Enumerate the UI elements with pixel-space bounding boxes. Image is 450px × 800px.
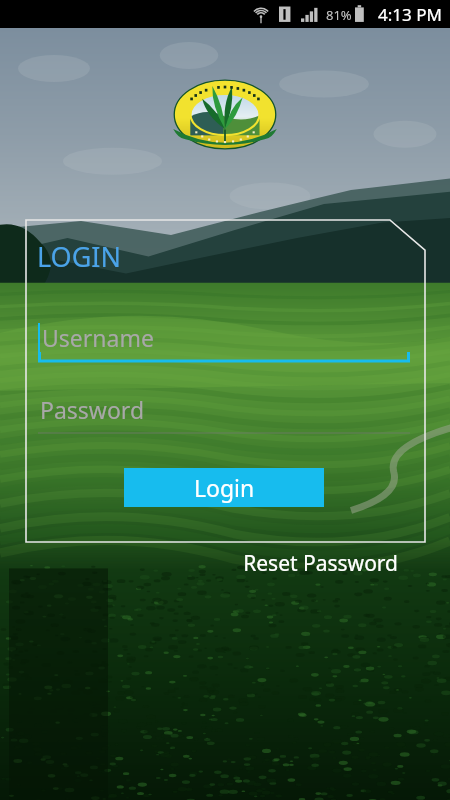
button[interactable]: Reset Password [239, 546, 402, 581]
staticText: Password [40, 394, 145, 425]
button[interactable]: Login [124, 468, 324, 507]
staticText: 4:13 PM [378, 3, 442, 26]
staticText: Login [194, 472, 255, 503]
staticText: LOGIN [37, 238, 122, 275]
button[interactable]: Username [38, 316, 410, 364]
staticText: Reset Password [243, 549, 398, 578]
staticText: Username [42, 322, 154, 353]
staticText: 81% [326, 6, 352, 24]
button[interactable]: Password [38, 388, 410, 436]
